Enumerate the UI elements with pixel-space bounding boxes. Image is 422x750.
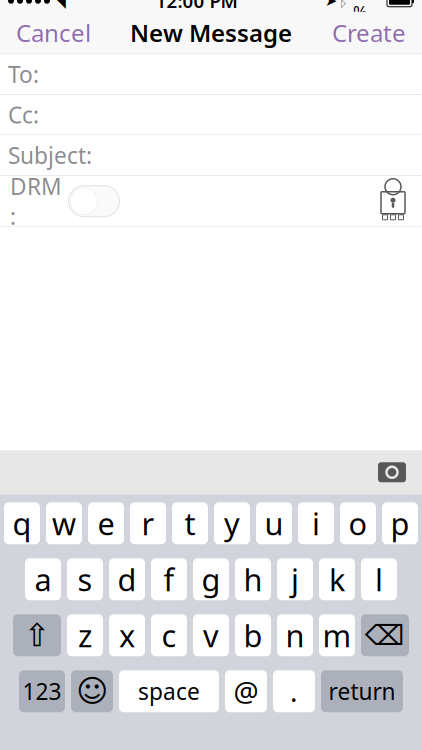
staticText: return bbox=[328, 676, 395, 706]
staticText: @ bbox=[233, 673, 258, 710]
staticText: i bbox=[312, 503, 320, 544]
button[interactable]: space bbox=[119, 670, 219, 712]
button[interactable]: f bbox=[151, 558, 187, 600]
button[interactable]: k bbox=[319, 558, 355, 600]
staticText: ☺ bbox=[76, 674, 108, 709]
button[interactable]: u bbox=[256, 502, 292, 544]
staticText: d bbox=[117, 559, 136, 600]
staticText: t bbox=[184, 503, 195, 544]
staticText: l bbox=[375, 559, 383, 600]
staticText: ⌫ bbox=[365, 619, 405, 651]
staticText: 123 bbox=[22, 676, 61, 706]
staticText: v bbox=[203, 615, 219, 656]
button[interactable]: e bbox=[88, 502, 124, 544]
staticText: 100% bbox=[353, 0, 383, 24]
staticText: Cancel bbox=[16, 17, 91, 49]
button[interactable]: DRM toggle bbox=[64, 181, 124, 221]
button[interactable]: s bbox=[67, 558, 103, 600]
button[interactable]: c bbox=[151, 614, 187, 656]
button[interactable]: q bbox=[4, 502, 40, 544]
staticText: o bbox=[348, 503, 367, 544]
button[interactable]: Shift bbox=[13, 614, 61, 656]
staticText: DRM: bbox=[10, 171, 62, 231]
button[interactable]: h bbox=[235, 558, 271, 600]
staticText: f bbox=[163, 559, 174, 600]
button[interactable]: @ bbox=[225, 670, 267, 712]
button[interactable]: i bbox=[298, 502, 334, 544]
staticText: m bbox=[322, 615, 351, 656]
staticText: New Message bbox=[130, 17, 292, 49]
staticText: u bbox=[264, 503, 283, 544]
staticText: x bbox=[119, 615, 135, 656]
button[interactable]: Camera bbox=[370, 455, 414, 489]
staticText: 12:00 PM bbox=[155, 0, 237, 13]
button[interactable]: Cancel bbox=[6, 12, 101, 54]
staticText: To: bbox=[8, 59, 39, 89]
button[interactable]: w bbox=[46, 502, 82, 544]
staticText: b bbox=[243, 615, 262, 656]
button[interactable]: j bbox=[277, 558, 313, 600]
staticText: h bbox=[243, 559, 262, 600]
staticText: n bbox=[285, 615, 304, 656]
staticText: ➤ bbox=[325, 0, 337, 9]
staticText: s bbox=[77, 559, 92, 600]
staticText: ◥ bbox=[52, 0, 65, 11]
button[interactable]: v bbox=[193, 614, 229, 656]
staticText: w bbox=[52, 503, 76, 544]
staticText: . bbox=[290, 673, 298, 710]
staticText: j bbox=[291, 559, 299, 600]
button[interactable]: t bbox=[172, 502, 208, 544]
button[interactable]: o bbox=[340, 502, 376, 544]
button[interactable]: 123 bbox=[19, 670, 65, 712]
staticText: z bbox=[78, 615, 92, 656]
staticText: y bbox=[224, 503, 240, 544]
staticText: a bbox=[34, 559, 51, 600]
staticText: e bbox=[97, 503, 114, 544]
staticText: k bbox=[329, 559, 345, 600]
button[interactable]: Emoji bbox=[71, 670, 113, 712]
staticText: Subject: bbox=[8, 140, 92, 170]
staticText: Cc: bbox=[8, 100, 39, 130]
staticText: c bbox=[161, 615, 176, 656]
button[interactable]: x bbox=[109, 614, 145, 656]
staticText: q bbox=[12, 503, 31, 544]
staticText: ⇧ bbox=[23, 617, 50, 653]
staticText: r bbox=[141, 503, 154, 544]
staticText: p bbox=[390, 503, 409, 544]
button[interactable]: g bbox=[193, 558, 229, 600]
staticText: Create bbox=[332, 17, 406, 49]
button[interactable]: r bbox=[130, 502, 166, 544]
button[interactable]: a bbox=[25, 558, 61, 600]
button[interactable]: b bbox=[235, 614, 271, 656]
staticText: g bbox=[201, 559, 220, 600]
button[interactable]: n bbox=[277, 614, 313, 656]
button[interactable]: m bbox=[319, 614, 355, 656]
button[interactable]: p bbox=[382, 502, 418, 544]
button[interactable]: . bbox=[273, 670, 315, 712]
button[interactable]: l bbox=[361, 558, 397, 600]
button[interactable]: Delete bbox=[361, 614, 409, 656]
button[interactable]: return bbox=[321, 670, 403, 712]
button[interactable]: y bbox=[214, 502, 250, 544]
staticText: space bbox=[138, 676, 200, 706]
button[interactable]: Secure attachment bbox=[372, 179, 414, 223]
staticText: ᛒ bbox=[338, 0, 348, 9]
button[interactable]: z bbox=[67, 614, 103, 656]
button[interactable]: Create bbox=[322, 12, 416, 54]
button[interactable]: d bbox=[109, 558, 145, 600]
